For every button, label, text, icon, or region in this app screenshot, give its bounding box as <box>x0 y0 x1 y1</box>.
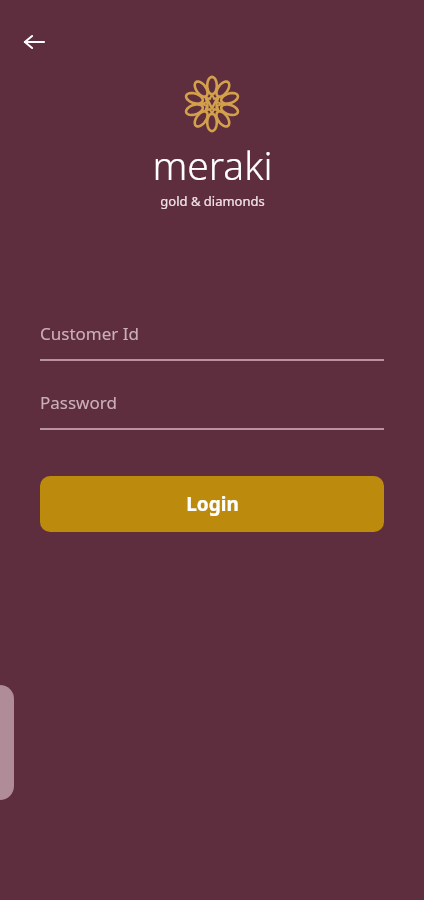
staticText: Customer Id <box>40 322 139 345</box>
button[interactable]: Login <box>40 476 384 532</box>
button[interactable]: Password <box>40 385 384 430</box>
staticText: gold & diamonds <box>160 192 265 210</box>
button[interactable]: Customer Id <box>40 316 384 361</box>
staticText: Login <box>186 491 239 517</box>
staticText: meraki <box>152 138 273 191</box>
button[interactable]: Back <box>10 18 58 66</box>
staticText: Password <box>40 391 117 414</box>
